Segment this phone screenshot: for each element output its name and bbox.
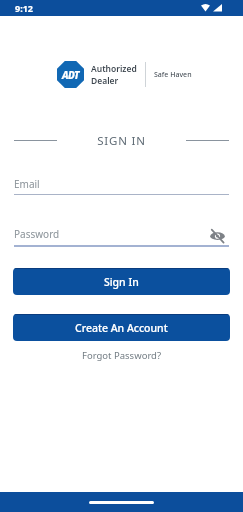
staticText: Forgot Password? — [82, 349, 162, 362]
staticText: Create An Account — [75, 321, 168, 335]
staticText: Dealer — [91, 75, 119, 87]
staticText: SIGN IN — [0, 133, 243, 149]
staticText: Sign In — [104, 275, 139, 289]
button[interactable]: Forgot Password? — [78, 347, 166, 364]
staticText: ADT — [62, 68, 79, 82]
button[interactable]: Email — [14, 173, 229, 195]
button[interactable]: Create An Account — [13, 314, 230, 341]
staticText: Authorized — [91, 63, 137, 75]
staticText: Password — [14, 227, 60, 241]
button[interactable]: Sign In — [13, 268, 230, 295]
staticText: Email — [14, 177, 40, 191]
button[interactable]: Password — [14, 225, 229, 247]
staticText: Safe Haven — [154, 70, 192, 80]
staticText: 9:12 — [15, 2, 33, 14]
